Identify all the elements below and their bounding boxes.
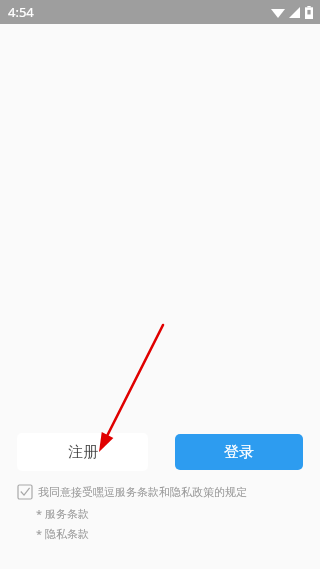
staticText: 我同意接受嘿逗服务条款和隐私政策的规定 — [38, 485, 247, 499]
button[interactable]: Agree checkbox — [18, 485, 247, 499]
staticText: 登录 — [224, 443, 254, 462]
button[interactable]: * 隐私条款 — [36, 526, 89, 541]
button[interactable]: * 服务条款 — [36, 506, 89, 521]
staticText: * 隐私条款 — [36, 526, 89, 541]
button[interactable]: 注册 — [17, 433, 148, 471]
button[interactable]: 登录 — [175, 434, 303, 470]
staticText: 4:54 — [8, 3, 34, 21]
staticText: * 服务条款 — [36, 506, 89, 521]
staticText: 注册 — [68, 443, 98, 462]
other: Agree checkbox — [18, 485, 32, 499]
